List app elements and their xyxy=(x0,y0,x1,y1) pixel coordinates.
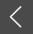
button[interactable]: Back xyxy=(0,0,33,34)
